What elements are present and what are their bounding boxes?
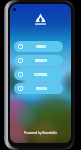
staticText: FIND US	[36, 87, 47, 91]
button[interactable]: VISION	[14, 41, 63, 52]
button[interactable]: TUTORIAL	[14, 69, 63, 80]
staticText: TUTORIAL	[34, 73, 48, 77]
staticText: MISSION	[35, 59, 47, 63]
button[interactable]: MISSION	[14, 55, 63, 66]
staticText: Powered by Emertello	[24, 131, 57, 135]
staticText: VISION	[36, 45, 46, 49]
button[interactable]: FIND US	[14, 83, 63, 94]
